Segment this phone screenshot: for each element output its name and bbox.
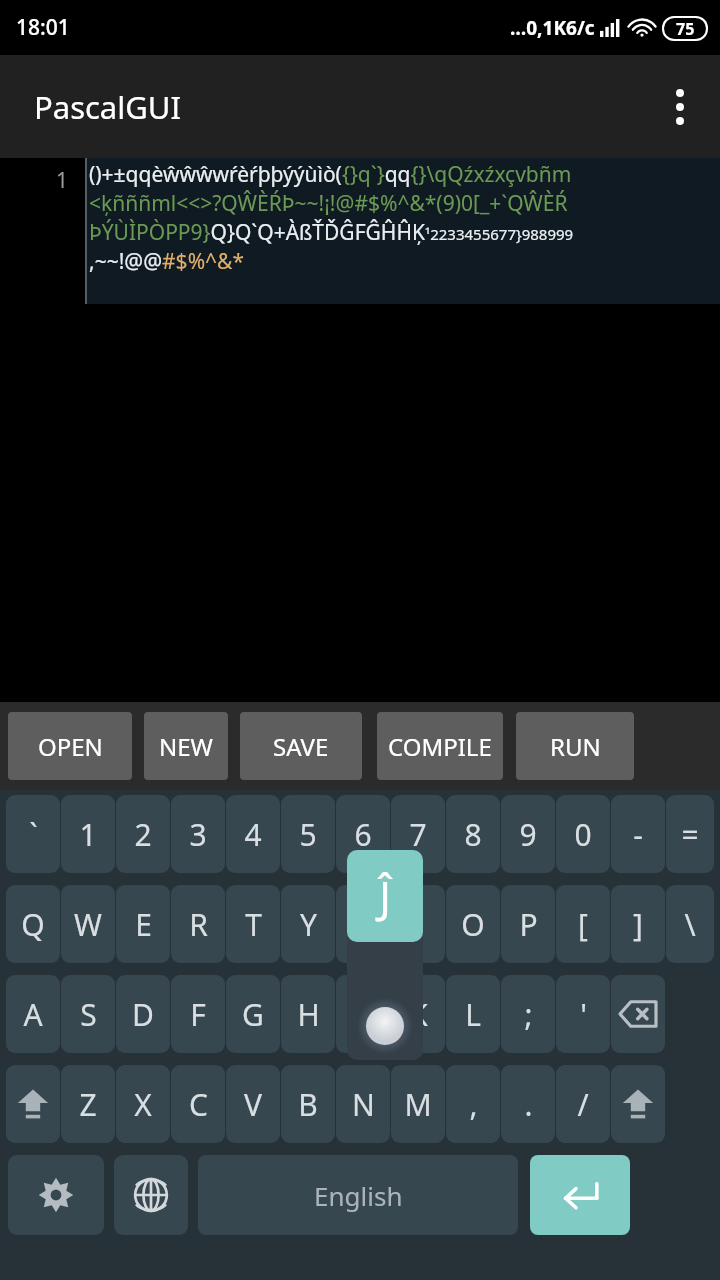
staticText: = [681,814,699,855]
button[interactable]: ` [6,795,60,873]
button[interactable]: G [226,975,280,1053]
staticText: 6 [354,814,372,855]
button[interactable] [336,885,390,963]
button[interactable]: R [171,885,225,963]
button[interactable]: I [391,885,445,963]
staticText: - [633,814,643,855]
staticText: ÞÝÙÌPÒPP9}Q}Q`Q+ÀßŤĎĜFĜĤĤĶ¹2233455677}98… [89,218,574,247]
staticText: F [190,994,206,1035]
button[interactable]: ] [611,885,665,963]
button[interactable]: P [501,885,555,963]
staticText: <ķñññml<<>?QŴÈŔÞ~~!¡!@#$%^&*(9)0[_+`QŴÈŔ [89,189,568,218]
button[interactable]: Q [6,885,60,963]
staticText: RUN [550,730,601,763]
staticText: O [461,904,485,945]
staticText: 0 [574,814,592,855]
staticText: E [135,904,152,945]
staticText: 18:01 [16,13,70,42]
button[interactable]: / [556,1065,610,1143]
staticText: PascalGUI [34,86,182,128]
button[interactable]: [ [556,885,610,963]
staticText: …0,1K6/c [510,15,595,41]
staticText: N [352,1084,375,1125]
staticText: 8 [464,814,482,855]
button[interactable]: X [116,1065,170,1143]
button[interactable]: ; [501,975,555,1053]
button[interactable]: H [281,975,335,1053]
button[interactable]: . [501,1065,555,1143]
staticText: H [297,994,320,1035]
button[interactable]: Z [61,1065,115,1143]
staticText: 1 [56,166,69,195]
staticText: B [298,1084,318,1125]
staticText: 7 [409,814,427,855]
staticText: ()+±qqèŵŵŵwŕèŕþþýýùìò({}q`}qq{}\qQźxźxçv… [89,160,572,189]
button[interactable]: D [116,975,170,1053]
button[interactable]: Change language [114,1155,188,1235]
staticText: / [577,1084,589,1125]
staticText: ] [633,904,643,945]
button[interactable]: W [61,885,115,963]
button[interactable] [336,975,390,1053]
button[interactable]: - [611,795,665,873]
staticText: ,~~!@@#$%^&* [89,247,245,276]
staticText: English [314,1178,403,1213]
button[interactable]: , [446,1065,500,1143]
staticText: 5 [299,814,317,855]
staticText: SAVE [273,730,329,763]
button[interactable]: O [446,885,500,963]
button[interactable]: 3 [171,795,225,873]
staticText: 2 [134,814,152,855]
button[interactable]: L [446,975,500,1053]
button[interactable]: S [61,975,115,1053]
staticText: 4 [244,814,262,855]
staticText: 3 [189,814,207,855]
staticText: I [413,904,424,945]
button[interactable]: SAVE [240,712,362,780]
button[interactable]: Settings [8,1155,104,1235]
button[interactable]: V [226,1065,280,1143]
button[interactable]: C [171,1065,225,1143]
button[interactable]: N [336,1065,390,1143]
staticText: COMPILE [388,730,492,763]
button[interactable]: 5 [281,795,335,873]
button[interactable]: 4 [226,795,280,873]
button[interactable]: 7 [391,795,445,873]
staticText: X [134,1084,152,1125]
button[interactable]: 2 [116,795,170,873]
staticText: \ [684,904,696,945]
button[interactable]: RUN [516,712,634,780]
button[interactable]: Shift [6,1065,60,1143]
button[interactable]: 0 [556,795,610,873]
button[interactable]: 6 [336,795,390,873]
staticText: R [189,904,208,945]
button[interactable]: A [6,975,60,1053]
button[interactable]: Backspace [611,975,665,1053]
button[interactable]: 9 [501,795,555,873]
button[interactable]: OPEN [8,712,132,780]
staticText: W [74,904,102,945]
staticText: P [519,904,538,945]
button[interactable]: B [281,1065,335,1143]
staticText: ` [29,814,38,855]
button[interactable]: F [171,975,225,1053]
button[interactable]: T [226,885,280,963]
button[interactable]: M [391,1065,445,1143]
button[interactable]: K [391,975,445,1053]
button[interactable]: 8 [446,795,500,873]
button[interactable]: NEW [144,712,228,780]
button[interactable]: ' [556,975,610,1053]
button[interactable]: COMPILE [377,712,503,780]
button[interactable]: E [116,885,170,963]
button[interactable]: Shift [611,1065,665,1143]
button[interactable]: = [666,795,714,873]
button[interactable]: \ [666,885,714,963]
button[interactable]: 1 [61,795,115,873]
button[interactable]: English [198,1155,518,1235]
button[interactable]: Y [281,885,335,963]
button[interactable]: More options [652,79,708,135]
staticText: S [80,994,97,1035]
staticText: ' [580,994,587,1035]
button[interactable]: Enter [530,1155,630,1235]
staticText: M [404,1084,432,1125]
